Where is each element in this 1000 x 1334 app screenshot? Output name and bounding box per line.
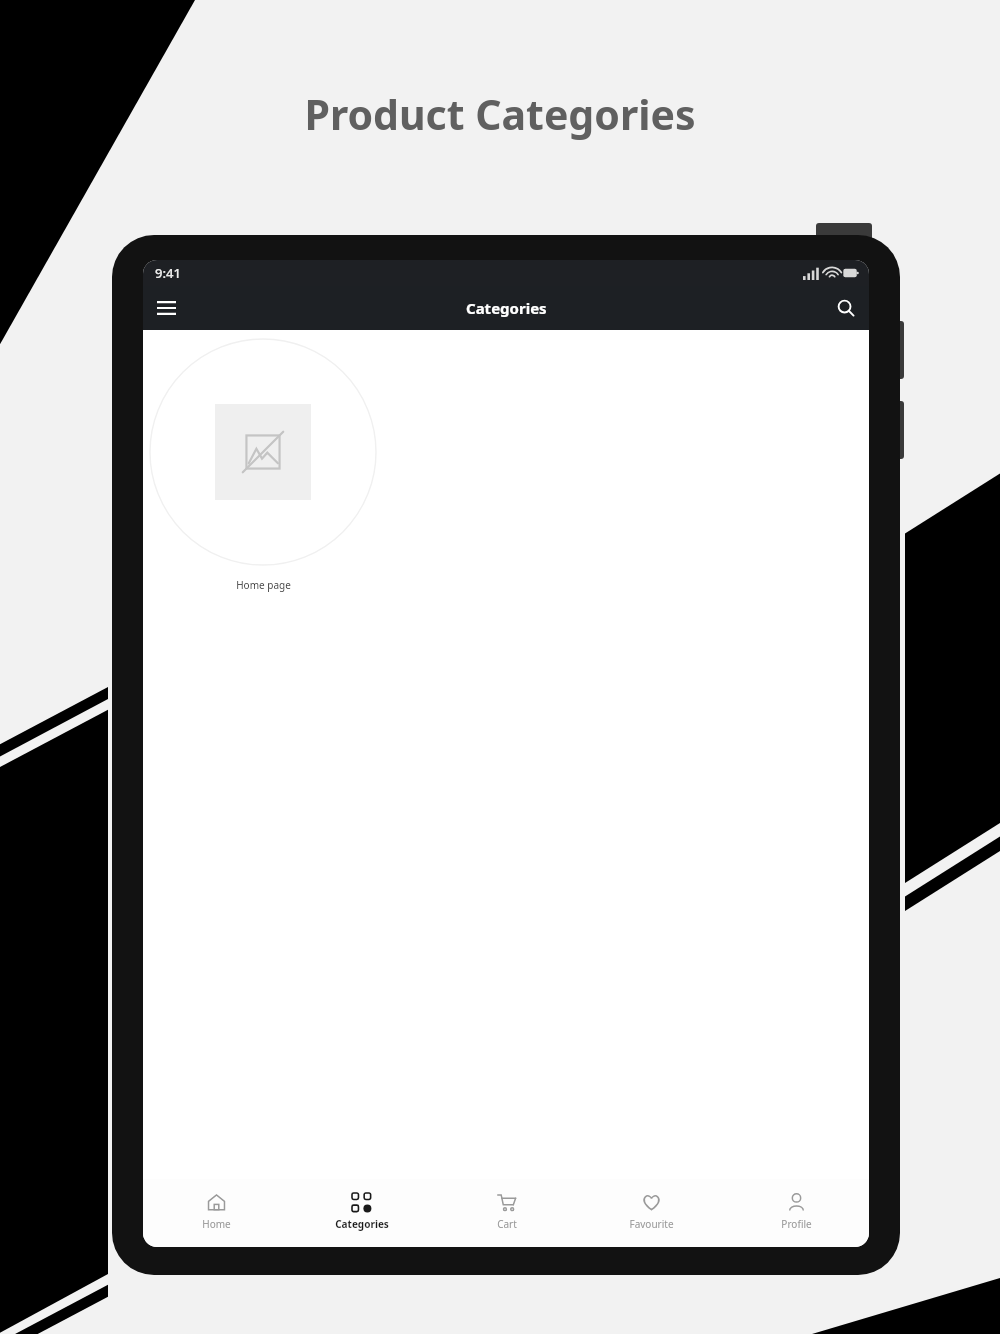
button[interactable]: Menu [149, 291, 183, 325]
staticText: Categories [335, 1217, 389, 1231]
staticText: Favourite [629, 1217, 674, 1231]
button[interactable]: Search [829, 291, 863, 325]
staticText: Product Categories [304, 86, 696, 142]
button[interactable]: Home [143, 1185, 289, 1247]
button[interactable]: Favourite [579, 1185, 724, 1247]
staticText: Profile [781, 1217, 812, 1231]
button[interactable]: Profile [724, 1185, 869, 1247]
staticText: 9:41 [155, 264, 181, 282]
staticText: Home page [236, 578, 291, 592]
button[interactable]: Home page [149, 338, 377, 592]
staticText: Categories [466, 298, 547, 318]
button[interactable]: Cart [434, 1185, 579, 1247]
button[interactable]: Categories [289, 1185, 434, 1247]
staticText: Home [202, 1217, 231, 1231]
staticText: Cart [497, 1217, 517, 1231]
